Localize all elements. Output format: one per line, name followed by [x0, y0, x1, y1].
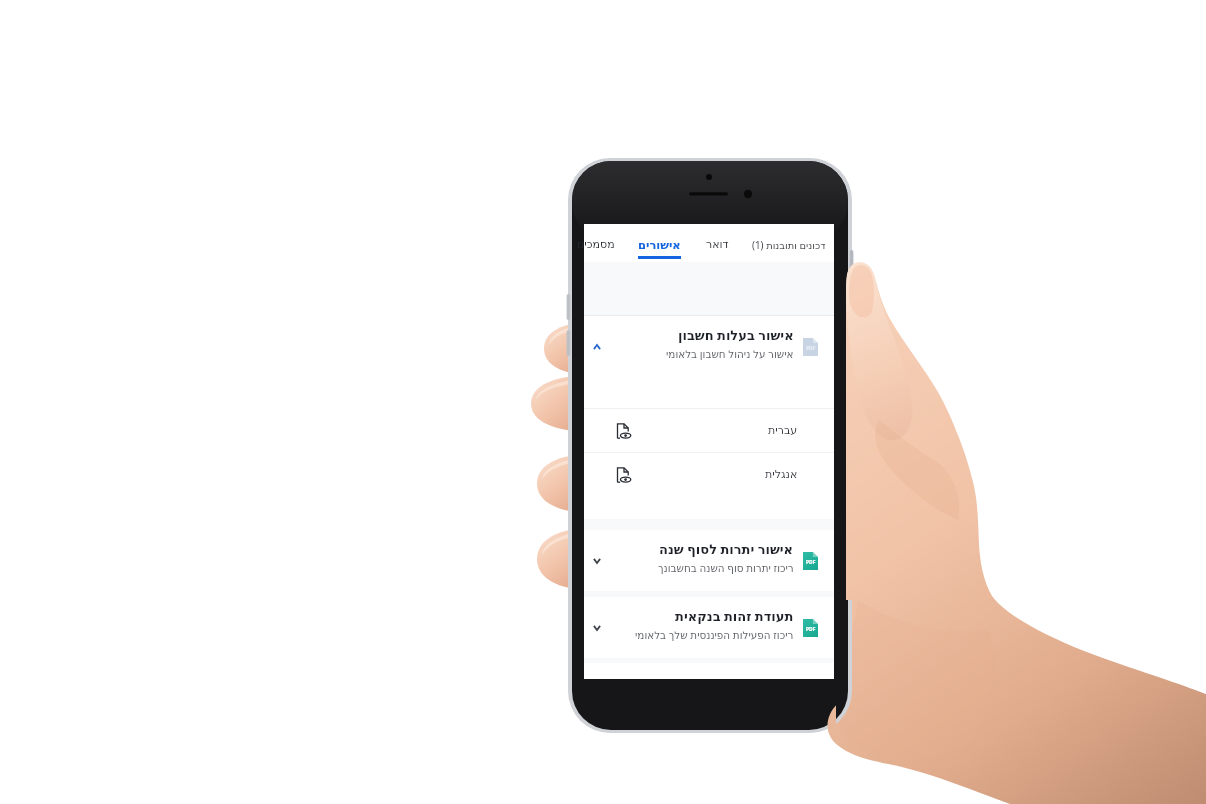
button[interactable]: Expand — [584, 530, 834, 591]
button[interactable]: Expand — [584, 597, 834, 658]
other: Preview document — [617, 467, 633, 483]
staticText: PDF — [806, 626, 816, 633]
staticText: דואר — [706, 238, 729, 251]
other: Collapse — [591, 341, 603, 353]
staticText: ריכוז יתרות סוף השנה בחשבונך — [658, 561, 794, 575]
staticText: עברית — [768, 424, 798, 437]
other: Preview document — [617, 423, 633, 439]
staticText: אישור בעלות חשבון — [678, 326, 794, 344]
staticText: PDF — [806, 345, 816, 352]
staticText: אישור על ניהול חשבון בלאומי — [666, 347, 794, 361]
other: Expand — [591, 622, 603, 634]
staticText: אישור יתרות לסוף שנה — [659, 540, 794, 558]
button[interactable]: עדכונים ותובנות (1) — [752, 224, 825, 262]
staticText: ריכוז הפעילות הפיננסית שלך בלאומי — [635, 628, 794, 642]
staticText: אנגלית — [765, 468, 798, 481]
button[interactable]: Preview document — [584, 409, 834, 452]
staticText: PDF — [806, 559, 816, 566]
staticText: עדכונים ותובנות (1) — [752, 238, 825, 251]
staticText: תעודת זהות בנקאית — [675, 607, 794, 625]
button[interactable]: Collapse — [584, 316, 834, 377]
staticText: מסמכים — [577, 238, 615, 251]
staticText: אישורים — [638, 238, 681, 251]
button[interactable]: דואר — [706, 224, 729, 262]
button[interactable]: Preview document — [584, 453, 834, 496]
button[interactable]: מסמכים — [577, 224, 615, 262]
button[interactable]: אישורים — [638, 224, 681, 262]
other: Expand — [591, 555, 603, 567]
